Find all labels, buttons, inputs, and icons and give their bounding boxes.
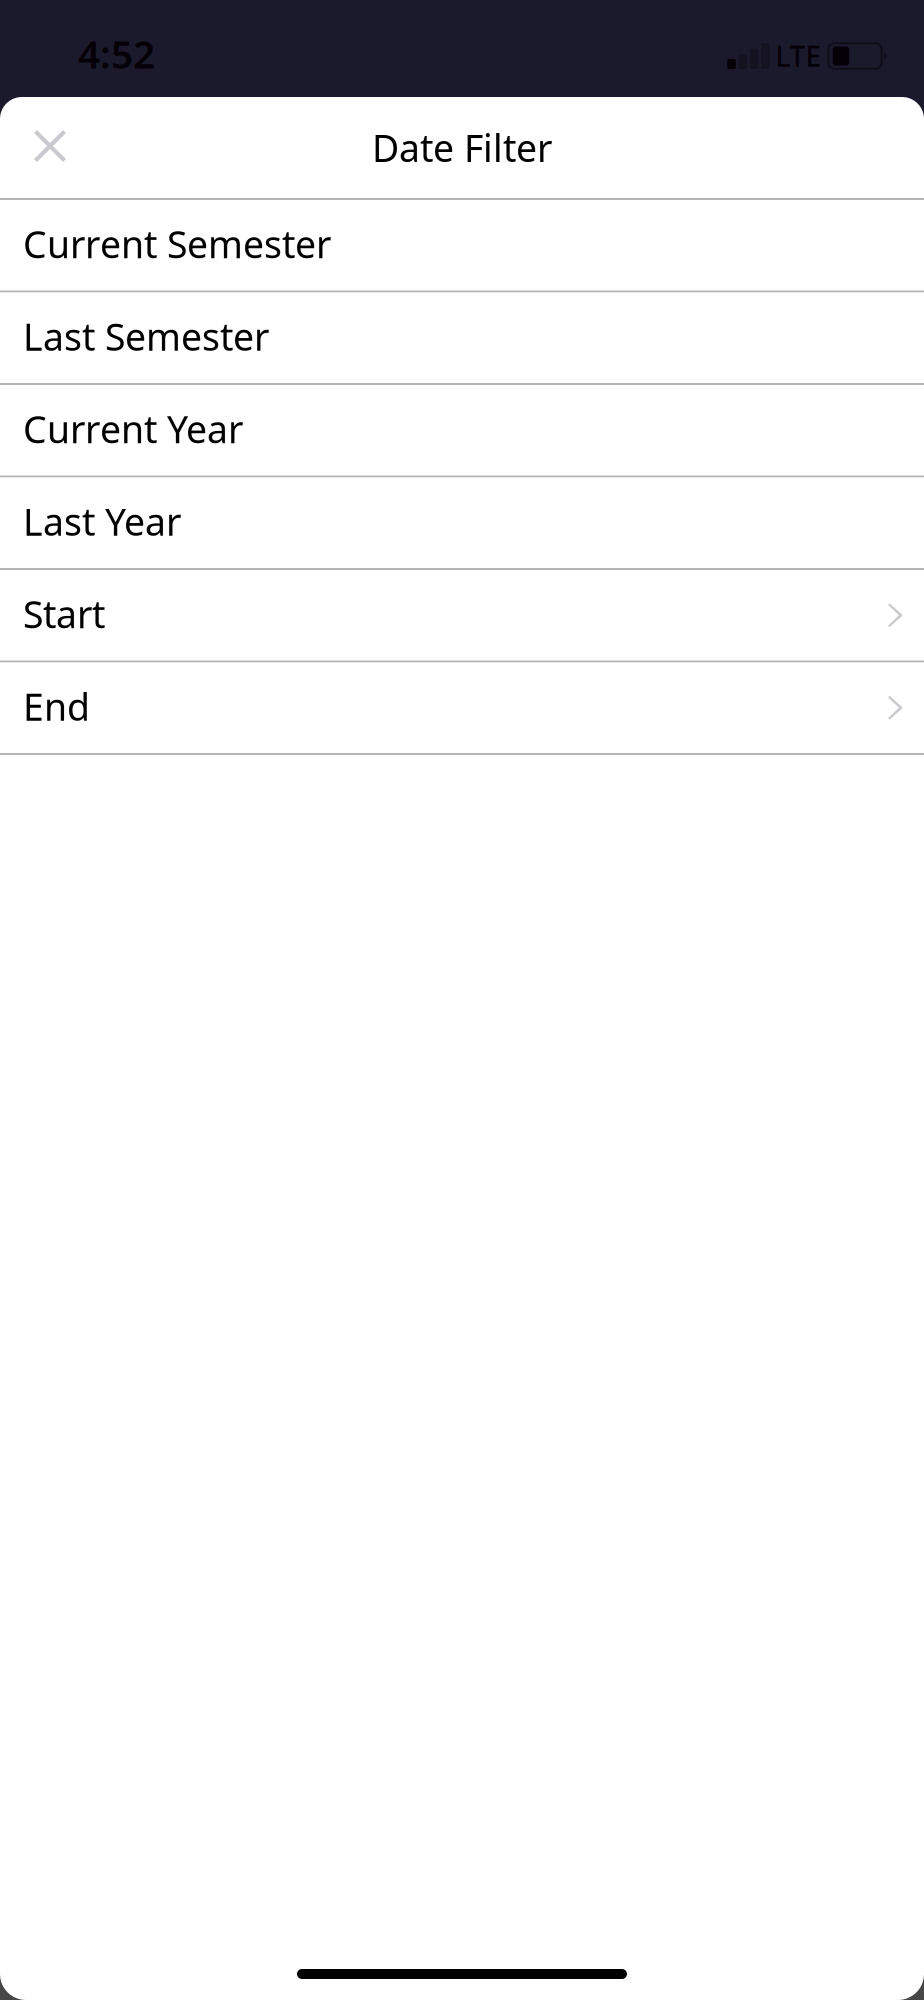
staticText: 4:52 <box>78 28 155 79</box>
staticText: Current Year <box>23 404 243 454</box>
staticText: Last Semester <box>23 311 269 361</box>
staticText: Start <box>23 589 105 639</box>
staticText: Last Year <box>23 496 181 546</box>
staticText: End <box>23 681 90 731</box>
button[interactable]: Last Year <box>0 477 924 570</box>
button[interactable]: Last Semester <box>0 292 924 385</box>
button[interactable]: End <box>0 662 924 755</box>
staticText: LTE <box>775 37 821 75</box>
staticText: Date Filter <box>372 123 552 172</box>
button[interactable]: Current Semester <box>0 200 924 292</box>
button[interactable]: Close <box>0 97 100 198</box>
button[interactable]: Start <box>0 570 924 662</box>
button[interactable]: Current Year <box>0 385 924 477</box>
staticText: Current Semester <box>23 219 331 269</box>
